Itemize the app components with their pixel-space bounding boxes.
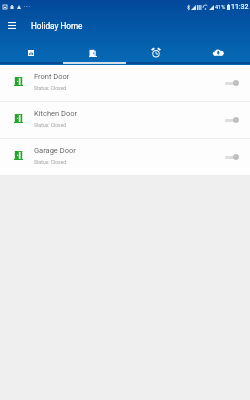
staticText: • • • [24, 4, 31, 9]
button[interactable]: Cloud [187, 38, 250, 65]
button[interactable]: Kitchen Door [0, 102, 250, 138]
button[interactable]: Toggle Front Door [222, 65, 250, 101]
staticText: 11:32 [231, 3, 249, 11]
button[interactable]: Alarms [124, 38, 187, 65]
staticText: 41% [215, 4, 226, 10]
button[interactable]: Front Door [0, 65, 250, 101]
button[interactable]: Toggle Garage Door [222, 139, 250, 175]
button[interactable]: Toggle Kitchen Door [222, 102, 250, 138]
staticText: Front Door [34, 72, 70, 81]
button[interactable]: Doors [62, 38, 124, 65]
staticText: Status: Closed [34, 122, 67, 128]
button[interactable]: Open navigation drawer [0, 13, 24, 38]
staticText: Status: Closed [34, 159, 67, 165]
staticText: Status: Closed [34, 85, 67, 91]
button[interactable]: Dashboard [0, 38, 62, 65]
staticText: Garage Door [34, 146, 76, 155]
staticText: Kitchen Door [34, 109, 78, 118]
staticText: Holiday Home [31, 21, 83, 31]
button[interactable]: Garage Door [0, 139, 250, 175]
